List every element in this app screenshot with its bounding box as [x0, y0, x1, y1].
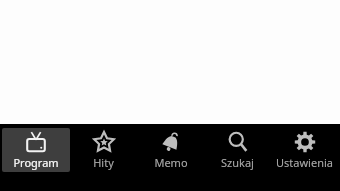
button[interactable]: Ustawienia	[271, 128, 338, 172]
staticText: Szukaj	[221, 155, 254, 170]
button[interactable]: Memo	[137, 128, 204, 172]
staticText: Program	[13, 155, 59, 170]
staticText: Memo	[154, 155, 188, 170]
button[interactable]: Szukaj	[204, 128, 271, 172]
button[interactable]: Program	[2, 128, 70, 172]
staticText: Ustawienia	[276, 155, 333, 170]
button[interactable]: Hity	[70, 128, 137, 172]
staticText: Hity	[93, 155, 114, 170]
